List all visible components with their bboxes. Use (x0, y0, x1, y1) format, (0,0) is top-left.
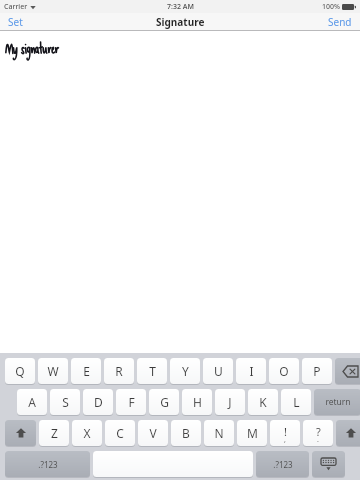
staticText: L (293, 394, 300, 410)
button[interactable]: O (269, 358, 299, 384)
staticText: H (193, 394, 202, 410)
staticText: Z (51, 425, 58, 441)
staticText: F (128, 394, 135, 410)
button[interactable]: Hide keyboard (312, 451, 345, 477)
staticText: E (83, 363, 90, 379)
staticText: .?123 (38, 459, 58, 470)
button[interactable]: .?123 (5, 451, 90, 477)
staticText: Signature (156, 15, 205, 29)
staticText: Set (8, 15, 23, 28)
staticText: 100% (322, 2, 340, 12)
staticText: N (214, 425, 224, 441)
button[interactable]: E (71, 358, 101, 384)
staticText: , (284, 435, 286, 445)
staticText: P (313, 363, 321, 379)
staticText: Send (328, 15, 352, 28)
staticText: I (249, 363, 254, 379)
button[interactable]: G (149, 389, 179, 415)
button[interactable]: R (104, 358, 134, 384)
staticText: return (325, 396, 351, 408)
staticText: W (47, 363, 59, 379)
button[interactable]: F (116, 389, 146, 415)
staticText: T (149, 363, 156, 379)
staticText: S (62, 394, 69, 410)
staticText: ? (316, 424, 321, 439)
button[interactable]: Shift (336, 420, 360, 446)
staticText: 7:32 AM (167, 2, 194, 12)
button[interactable]: M (237, 420, 267, 446)
button[interactable]: N (204, 420, 234, 446)
staticText: . (317, 435, 319, 445)
button[interactable]: I (236, 358, 266, 384)
staticText: G (160, 394, 169, 410)
button[interactable]: Space (93, 451, 253, 477)
button[interactable]: Z (39, 420, 69, 446)
staticText: Q (15, 363, 25, 379)
staticText: K (259, 394, 267, 410)
staticText: Carrier (4, 2, 28, 12)
staticText: .?123 (273, 459, 293, 470)
staticText: R (115, 363, 123, 379)
button[interactable]: X (72, 420, 102, 446)
staticText: O (279, 363, 289, 379)
staticText: Y (182, 363, 189, 379)
button[interactable]: U (203, 358, 233, 384)
staticText: D (94, 394, 103, 410)
button[interactable]: A (17, 389, 47, 415)
staticText: A (28, 394, 36, 410)
button[interactable]: Send (320, 13, 360, 30)
button[interactable]: Backspace (335, 358, 360, 384)
staticText: B (182, 425, 190, 441)
button[interactable]: Y (170, 358, 200, 384)
button[interactable]: B (171, 420, 201, 446)
staticText: C (116, 425, 124, 441)
staticText: X (83, 425, 91, 441)
button[interactable]: J (215, 389, 245, 415)
staticText: ! (284, 424, 287, 439)
button[interactable]: Set (0, 13, 31, 30)
button[interactable]: V (138, 420, 168, 446)
button[interactable]: return (314, 389, 360, 415)
button[interactable]: T (137, 358, 167, 384)
button[interactable]: S (50, 389, 80, 415)
button[interactable]: D (83, 389, 113, 415)
button[interactable]: ? (303, 420, 333, 446)
button[interactable]: Q (5, 358, 35, 384)
staticText: V (149, 425, 157, 441)
staticText: J (228, 394, 232, 410)
button[interactable]: W (38, 358, 68, 384)
staticText: M (247, 425, 258, 441)
button[interactable]: Shift (5, 420, 36, 446)
button[interactable]: C (105, 420, 135, 446)
button[interactable]: H (182, 389, 212, 415)
button[interactable]: L (281, 389, 311, 415)
staticText: U (214, 363, 223, 379)
button[interactable]: .?123 (256, 451, 309, 477)
button[interactable]: P (302, 358, 332, 384)
button[interactable]: ! (270, 420, 300, 446)
button[interactable]: K (248, 389, 278, 415)
